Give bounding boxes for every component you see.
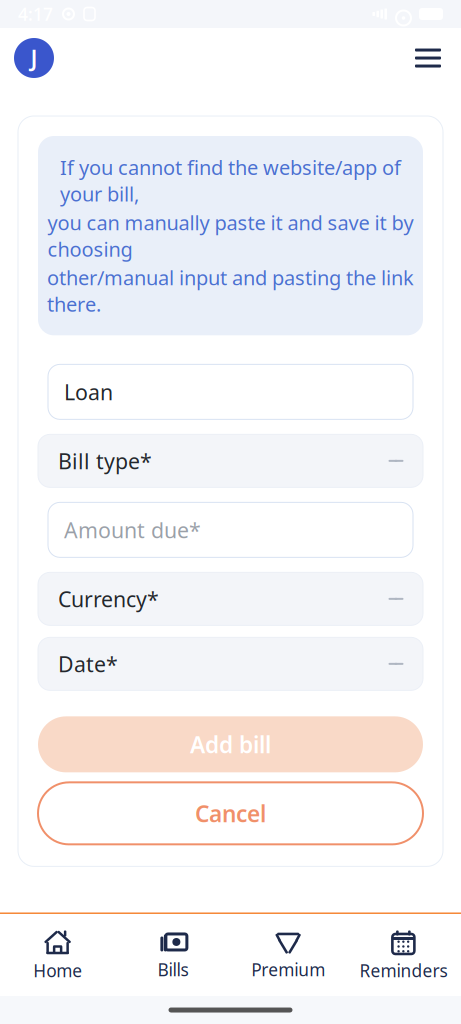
staticText: Amount due* (64, 516, 201, 544)
button[interactable]: Bills (115, 925, 230, 987)
staticText: Add bill (190, 729, 271, 759)
button[interactable]: Premium (230, 925, 346, 987)
staticText: Bill type* (58, 447, 152, 475)
button[interactable]: Bill type* (38, 434, 423, 487)
staticText: Currency* (58, 585, 159, 613)
button[interactable]: Menu (407, 40, 449, 75)
button[interactable]: Reminders (346, 924, 461, 988)
button[interactable]: Currency* (38, 572, 423, 625)
staticText: Date* (58, 650, 118, 678)
button[interactable]: Cancel (38, 782, 423, 844)
staticText: Loan (64, 378, 113, 406)
staticText: Premium (251, 958, 325, 981)
staticText: you can manually paste it and save it by… (47, 209, 413, 262)
staticText: Home (33, 959, 82, 982)
staticText: J (30, 43, 37, 73)
button[interactable]: Add bill (38, 716, 423, 772)
staticText: Cancel (195, 798, 266, 828)
staticText: Reminders (359, 959, 447, 982)
staticText: other/manual input and pasting the link … (47, 264, 414, 317)
staticText: If you cannot find the website/app of yo… (60, 154, 401, 207)
button[interactable]: Home (0, 924, 115, 988)
button[interactable]: Date* (38, 637, 423, 690)
staticText: 4:17 (18, 2, 53, 25)
button[interactable]: Profile (14, 38, 54, 78)
staticText: Bills (157, 958, 188, 981)
